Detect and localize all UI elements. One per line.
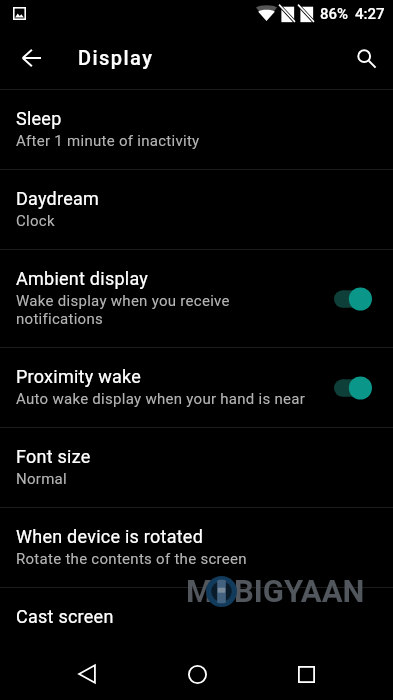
staticText: Font size — [16, 446, 91, 467]
staticText: 86% — [320, 5, 349, 23]
button[interactable]: Toggle Proximity wake — [334, 372, 372, 404]
staticText: Sleep — [16, 108, 62, 129]
staticText: Proximity wake — [16, 366, 142, 387]
button[interactable]: Cast screen — [0, 588, 393, 648]
button[interactable]: Font size — [0, 428, 393, 507]
staticText: Auto wake display when your hand is near — [16, 390, 306, 408]
staticText: Normal — [16, 470, 67, 488]
staticText: When device is rotated — [16, 526, 204, 547]
button[interactable]: Ambient display — [0, 250, 393, 347]
button[interactable]: Recent apps — [274, 648, 338, 700]
staticText: Clock — [16, 212, 55, 230]
button[interactable]: Navigate up — [7, 34, 55, 82]
staticText: Ambient display — [16, 268, 149, 289]
staticText: Display — [78, 46, 154, 69]
button[interactable]: Sleep — [0, 90, 393, 169]
button[interactable]: When device is rotated — [0, 508, 393, 587]
staticText: Wake display when you receive notificati… — [16, 292, 307, 328]
button[interactable]: Proximity wake — [0, 348, 393, 427]
button[interactable]: Back — [55, 648, 119, 700]
staticText: Rotate the contents of the screen — [16, 550, 247, 568]
button[interactable]: Search — [342, 34, 390, 82]
button[interactable]: Daydream — [0, 170, 393, 249]
staticText: Daydream — [16, 188, 100, 209]
staticText: After 1 minute of inactivity — [16, 132, 200, 150]
button[interactable]: Home — [165, 648, 229, 700]
staticText: 4:27 — [355, 5, 385, 23]
staticText: M — [186, 573, 214, 609]
button[interactable]: Toggle Ambient display — [334, 283, 372, 315]
staticText: BIGYAAN — [234, 573, 365, 609]
staticText: Cast screen — [16, 606, 114, 627]
